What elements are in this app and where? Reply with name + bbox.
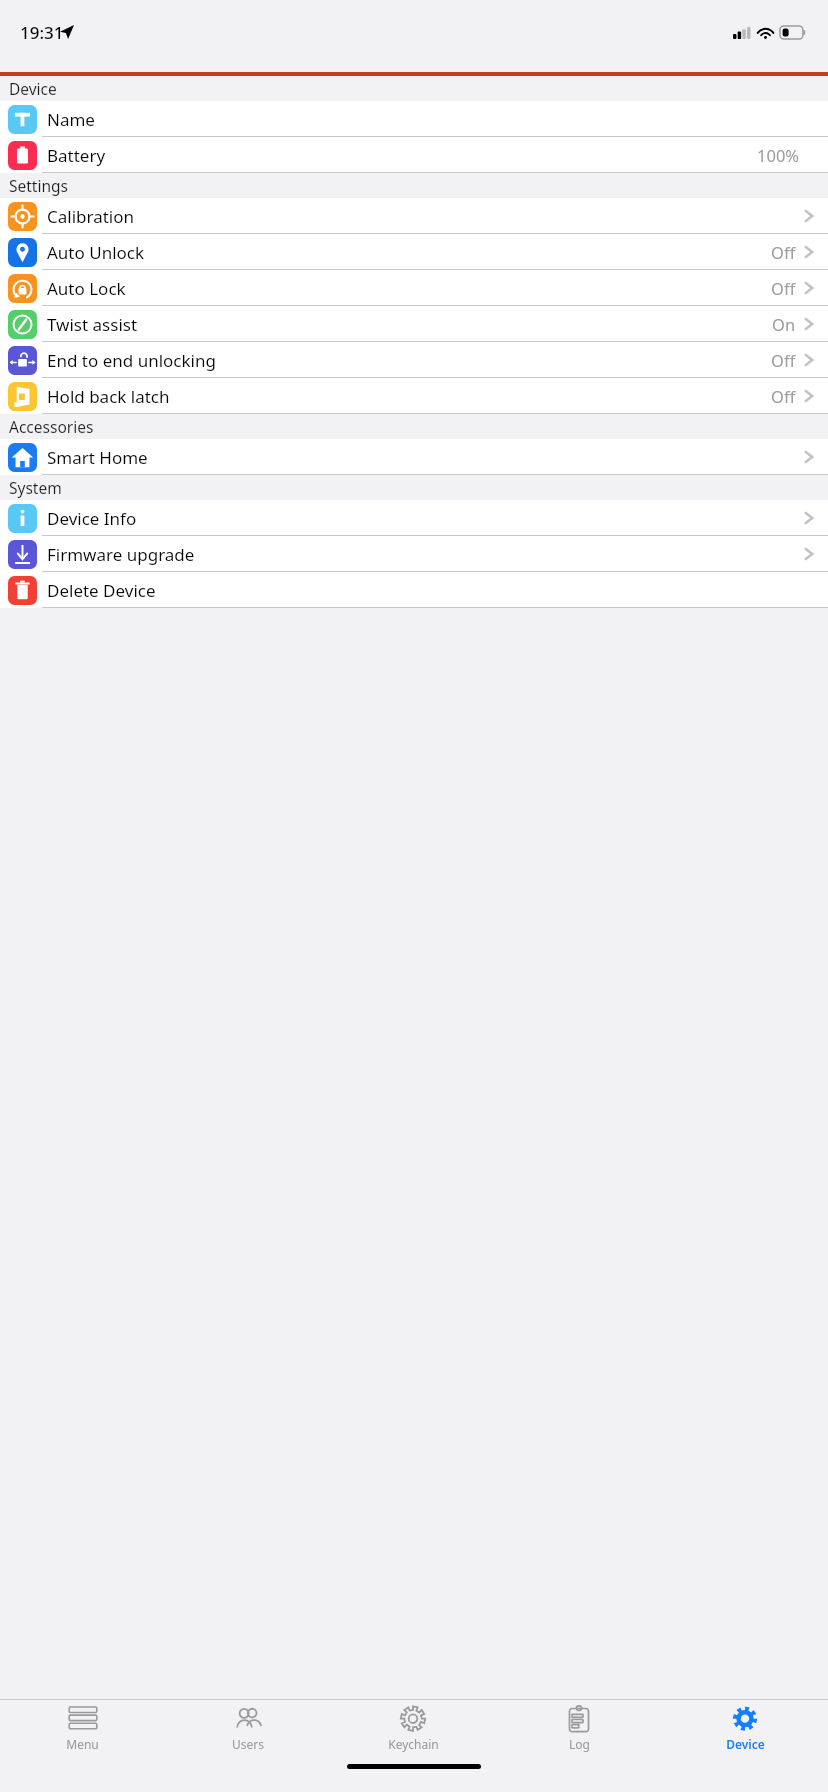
staticText: Keychain	[388, 1736, 439, 1752]
button[interactable]: Device	[662, 1700, 828, 1758]
staticText: Hold back latch	[47, 385, 170, 408]
staticText: Off	[771, 277, 796, 299]
button[interactable]: End to end unlocking	[0, 342, 828, 378]
staticText: 100%	[757, 144, 800, 166]
staticText: Auto Unlock	[47, 241, 145, 264]
button[interactable]: Auto Lock	[0, 270, 828, 306]
button[interactable]: Device Info	[0, 500, 828, 536]
button[interactable]: Delete Device	[0, 572, 828, 608]
staticText: Accessories	[9, 416, 94, 437]
staticText: Auto Lock	[47, 277, 126, 300]
staticText: System	[9, 477, 62, 498]
staticText: Firmware upgrade	[47, 543, 195, 566]
staticText: Users	[232, 1736, 264, 1752]
staticText: End to end unlocking	[47, 349, 216, 372]
button[interactable]: Smart Home	[0, 439, 828, 475]
staticText: Twist assist	[47, 313, 138, 336]
staticText: Menu	[66, 1736, 99, 1752]
staticText: 19:31	[20, 21, 64, 44]
staticText: Off	[771, 349, 796, 371]
button[interactable]: Menu	[0, 1700, 165, 1758]
button[interactable]: Log	[496, 1700, 662, 1758]
button[interactable]: Hold back latch	[0, 378, 828, 414]
staticText: Device Info	[47, 507, 137, 530]
staticText: Device	[9, 78, 57, 99]
staticText: Calibration	[47, 205, 135, 228]
staticText: Off	[771, 241, 796, 263]
button[interactable]: Calibration	[0, 198, 828, 234]
staticText: Log	[569, 1736, 590, 1752]
button[interactable]: Users	[165, 1700, 330, 1758]
staticText: Smart Home	[47, 446, 148, 469]
staticText: Settings	[9, 175, 68, 196]
staticText: Battery	[47, 144, 106, 167]
button[interactable]: Twist assist	[0, 306, 828, 342]
button[interactable]: Battery	[0, 137, 828, 173]
staticText: Off	[771, 385, 796, 407]
button[interactable]: Keychain	[330, 1700, 496, 1758]
button[interactable]: Auto Unlock	[0, 234, 828, 270]
button[interactable]: Name	[0, 101, 828, 137]
staticText: Device	[726, 1736, 765, 1752]
staticText: On	[772, 313, 796, 335]
staticText: Name	[47, 108, 95, 131]
staticText: Delete Device	[47, 579, 156, 602]
button[interactable]: Firmware upgrade	[0, 536, 828, 572]
